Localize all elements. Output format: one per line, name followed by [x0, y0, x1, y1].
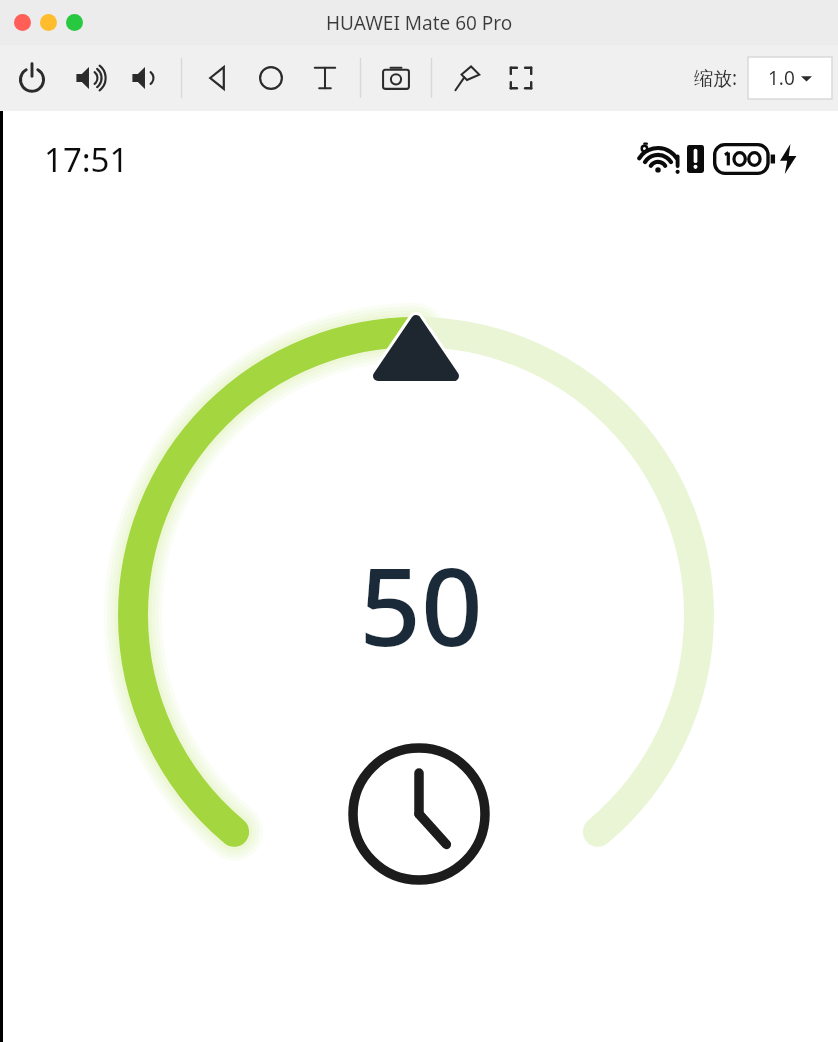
- button[interactable]: 1.0: [748, 57, 832, 99]
- staticText: HUAWEI Mate 60 Pro: [326, 10, 513, 36]
- button[interactable]: Home: [249, 56, 293, 100]
- button[interactable]: Text input: [303, 56, 347, 100]
- button[interactable]: Volume down: [124, 56, 168, 100]
- button[interactable]: Fullscreen: [499, 56, 543, 100]
- button[interactable]: Pin window: [445, 56, 489, 100]
- button[interactable]: Volume up: [68, 56, 112, 100]
- button[interactable]: 50: [0, 111, 838, 1042]
- button[interactable]: Screenshot: [374, 56, 418, 100]
- button[interactable]: Back: [195, 56, 239, 100]
- staticText: 缩放:: [694, 65, 738, 91]
- staticText: 50: [359, 531, 483, 678]
- button[interactable]: Power: [10, 56, 54, 100]
- staticText: 1.0: [768, 65, 795, 91]
- staticText: 17:51: [44, 137, 129, 182]
